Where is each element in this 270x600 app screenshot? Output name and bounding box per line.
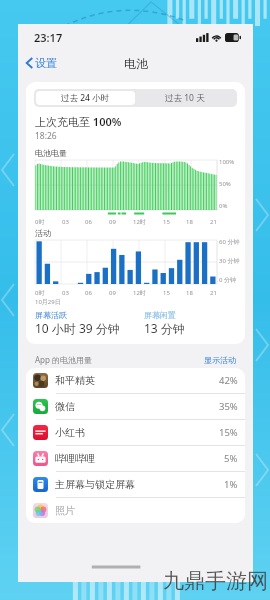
- staticText: 18: [186, 218, 193, 226]
- staticText: 09: [109, 289, 116, 297]
- button[interactable]: 哔哩哔哩: [26, 446, 245, 471]
- staticText: 15%: [219, 426, 238, 439]
- staticText: 12时: [133, 289, 146, 297]
- button[interactable]: 微信: [26, 394, 245, 419]
- staticText: 09: [109, 218, 116, 226]
- button[interactable]: 主屏幕与锁定屏幕: [26, 472, 245, 497]
- staticText: 30 分钟: [219, 257, 240, 265]
- staticText: 过去 10 天: [165, 92, 205, 104]
- staticText: 屏幕闲置: [144, 310, 176, 320]
- staticText: 0%: [219, 202, 228, 210]
- staticText: 15: [163, 289, 170, 297]
- staticText: 上次充电至 100%: [35, 114, 122, 129]
- staticText: 0 分钟: [219, 276, 236, 284]
- staticText: 100%: [219, 158, 235, 166]
- staticText: 5%: [224, 452, 238, 465]
- button[interactable]: 过去 10 天: [135, 91, 235, 105]
- staticText: 10 小时 39 分钟: [35, 320, 120, 336]
- staticText: 九鼎手游网: [163, 568, 268, 594]
- staticText: 显示活动: [204, 355, 236, 365]
- staticText: 电池: [124, 56, 148, 71]
- staticText: 过去 24 小时: [61, 92, 110, 104]
- staticText: 哔哩哔哩: [55, 452, 95, 465]
- staticText: 屏幕活跃: [35, 310, 67, 320]
- staticText: 21: [210, 218, 217, 226]
- staticText: 23:17: [34, 30, 63, 45]
- button[interactable]: 设置: [18, 53, 63, 73]
- staticText: 活动: [35, 228, 51, 238]
- staticText: App 的电池用量: [35, 354, 93, 365]
- staticText: 03: [62, 289, 69, 297]
- staticText: 微信: [55, 400, 75, 413]
- staticText: 主屏幕与锁定屏幕: [55, 478, 135, 491]
- staticText: 0时: [35, 289, 45, 297]
- staticText: 10月29日: [35, 298, 61, 306]
- staticText: 12时: [133, 218, 146, 226]
- staticText: 50%: [219, 180, 231, 188]
- staticText: 06: [85, 218, 92, 226]
- staticText: 18:26: [35, 130, 57, 142]
- staticText: 60 分钟: [219, 238, 240, 246]
- button[interactable]: 显示活动: [204, 355, 236, 365]
- staticText: 和平精英: [55, 374, 95, 387]
- button[interactable]: 过去 24 小时: [36, 91, 135, 105]
- staticText: 15: [163, 218, 170, 226]
- staticText: 1%: [224, 478, 238, 491]
- staticText: 电池电量: [35, 148, 67, 158]
- staticText: 0时: [35, 218, 45, 226]
- staticText: 13 分钟: [144, 320, 185, 336]
- staticText: 小红书: [55, 426, 85, 439]
- button[interactable]: 和平精英: [26, 368, 245, 393]
- staticText: 42%: [219, 374, 238, 387]
- staticText: 21: [210, 289, 217, 297]
- staticText: 照片: [55, 504, 75, 517]
- staticText: 18: [186, 289, 193, 297]
- button[interactable]: 照片: [26, 498, 245, 523]
- staticText: 03: [62, 218, 69, 226]
- staticText: 35%: [219, 400, 238, 413]
- staticText: 06: [85, 289, 92, 297]
- button[interactable]: 小红书: [26, 420, 245, 445]
- staticText: 设置: [35, 56, 57, 70]
